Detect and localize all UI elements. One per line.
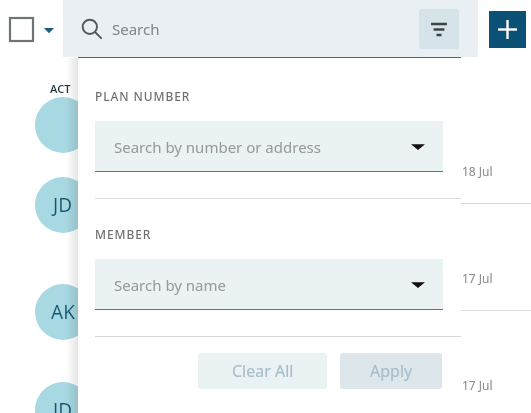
- staticText: Search: [112, 19, 160, 39]
- staticText: Search by name: [114, 275, 227, 295]
- button[interactable]: Search by name: [95, 259, 443, 310]
- button[interactable]: Select all: [10, 18, 33, 41]
- button[interactable]: Clear All: [198, 353, 327, 389]
- button[interactable]: JD: [35, 382, 91, 413]
- staticText: 18 Jul: [462, 163, 493, 179]
- staticText: Apply: [370, 360, 413, 382]
- button[interactable]: Search: [63, 0, 478, 57]
- button[interactable]: Filter: [419, 9, 459, 49]
- staticText: ACT: [50, 81, 71, 96]
- staticText: Search by number or address: [114, 137, 321, 157]
- staticText: JD: [53, 192, 73, 218]
- button[interactable]: Add: [489, 11, 526, 48]
- staticText: 17 Jul: [462, 377, 493, 393]
- button[interactable]: [35, 97, 91, 153]
- staticText: MEMBER: [95, 226, 152, 242]
- staticText: PLAN NUMBER: [95, 88, 191, 104]
- staticText: 17 Jul: [462, 270, 493, 286]
- button[interactable]: Selection options: [41, 22, 57, 38]
- staticText: Clear All: [232, 360, 294, 382]
- button[interactable]: AK: [35, 284, 91, 340]
- staticText: JD: [53, 397, 73, 413]
- button[interactable]: Apply: [340, 353, 442, 389]
- button[interactable]: Search by number or address: [95, 121, 443, 172]
- button[interactable]: JD: [35, 177, 91, 233]
- staticText: AK: [51, 299, 75, 325]
